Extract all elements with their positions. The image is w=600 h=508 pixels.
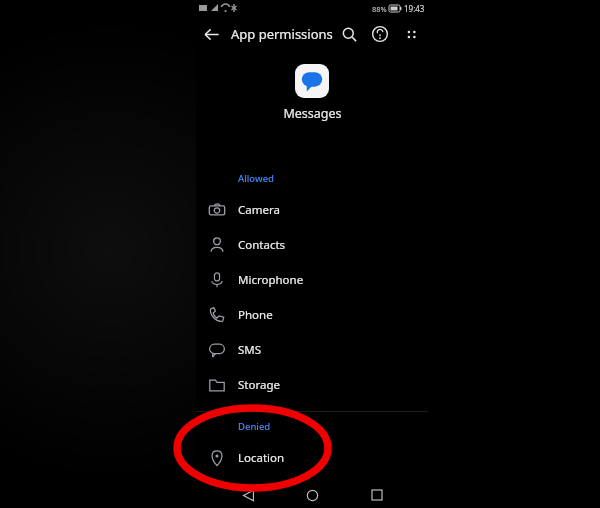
button[interactable]: Home [299,482,325,508]
staticText: Allowed [238,172,274,185]
button[interactable]: Recent apps [364,482,390,508]
button[interactable]: Back [235,482,261,508]
button[interactable]: Microphone [196,262,428,297]
staticText: Contacts [238,237,286,253]
staticText: SMS [238,342,262,358]
button[interactable]: Help [365,19,395,49]
button[interactable]: SMS [196,332,428,367]
staticText: Phone [238,307,273,323]
button[interactable]: Storage [196,367,428,402]
button[interactable]: More options [396,19,426,49]
staticText: 19:43 [404,3,425,14]
button[interactable]: Camera [196,192,428,227]
staticText: Messages [283,105,342,122]
button[interactable]: Search [334,19,364,49]
button[interactable]: Contacts [196,227,428,262]
staticText: Location [238,450,285,466]
staticText: Denied [238,420,271,433]
staticText: Storage [238,377,280,393]
staticText: Camera [238,202,280,218]
staticText: 88% [372,4,387,14]
button[interactable]: Location [196,440,428,475]
staticText: Microphone [238,272,304,288]
button[interactable]: Phone [196,297,428,332]
button[interactable]: App permissions [231,25,333,43]
button[interactable]: Back [196,19,226,49]
